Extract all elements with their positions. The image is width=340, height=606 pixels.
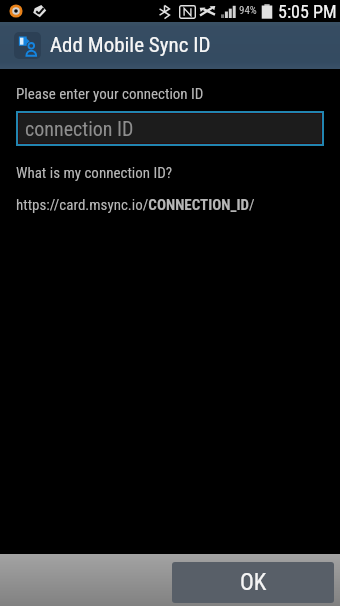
staticText: OK bbox=[240, 569, 267, 596]
button[interactable]: OK bbox=[172, 562, 334, 603]
staticText: Add Mobile Sync ID bbox=[50, 33, 211, 58]
staticText: Please enter your connection ID bbox=[16, 85, 204, 103]
staticText: 5:05 PM bbox=[278, 1, 337, 22]
staticText: https://card.msync.io/CONNECTION_ID/ bbox=[16, 196, 255, 214]
staticText: connection ID bbox=[25, 117, 134, 140]
staticText: 94% bbox=[239, 4, 257, 17]
staticText: What is my connection ID? bbox=[16, 164, 173, 182]
button[interactable]: connection ID bbox=[19, 114, 321, 143]
button[interactable]: Add Mobile Sync ID bbox=[14, 22, 340, 69]
